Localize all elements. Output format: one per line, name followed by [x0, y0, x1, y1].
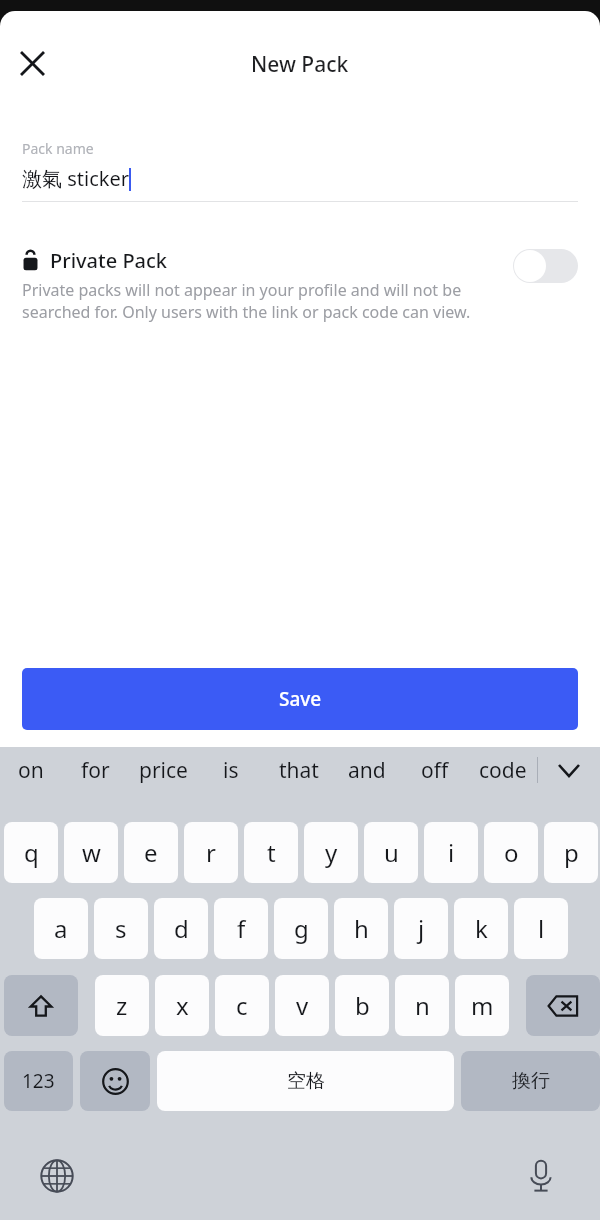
staticText: e — [144, 836, 158, 869]
staticText: Pack name — [22, 139, 94, 158]
staticText: 空格 — [287, 1069, 325, 1093]
button[interactable]: h — [334, 898, 388, 959]
button[interactable]: y — [304, 822, 358, 883]
button[interactable]: Shift — [4, 975, 78, 1036]
staticText: h — [354, 912, 369, 945]
button[interactable]: that — [265, 747, 333, 793]
button[interactable]: u — [364, 822, 418, 883]
button[interactable]: p — [544, 822, 598, 883]
staticText: and — [348, 756, 386, 785]
button[interactable]: Backspace — [526, 975, 600, 1036]
staticText: 換行 — [512, 1069, 550, 1093]
button[interactable]: o — [484, 822, 538, 883]
button[interactable]: s — [94, 898, 148, 959]
staticText: 激氣 sticker — [22, 165, 129, 192]
staticText: b — [355, 989, 370, 1022]
button[interactable]: r — [184, 822, 238, 883]
staticText: 123 — [22, 1068, 55, 1094]
button[interactable]: Private Pack — [22, 247, 578, 323]
button[interactable]: m — [455, 975, 509, 1036]
staticText: q — [24, 836, 39, 869]
button[interactable]: x — [155, 975, 209, 1036]
staticText: Private packs will not appear in your pr… — [22, 279, 490, 323]
button[interactable]: v — [275, 975, 329, 1036]
button[interactable]: c — [215, 975, 269, 1036]
staticText: k — [475, 912, 488, 945]
staticText: a — [54, 912, 68, 945]
staticText: v — [296, 989, 309, 1022]
button[interactable]: 換行 — [461, 1051, 600, 1111]
staticText: i — [448, 836, 455, 869]
staticText: p — [564, 836, 579, 869]
button[interactable]: Close — [9, 40, 56, 87]
staticText: f — [237, 912, 246, 945]
button[interactable]: d — [154, 898, 208, 959]
button[interactable]: a — [34, 898, 88, 959]
staticText: is — [223, 756, 239, 785]
button[interactable]: n — [395, 975, 449, 1036]
button[interactable]: for — [61, 747, 129, 793]
button[interactable]: price — [129, 747, 197, 793]
button[interactable]: e — [124, 822, 178, 883]
button[interactable]: l — [514, 898, 568, 959]
button[interactable]: Change keyboard language — [33, 1152, 81, 1200]
staticText: t — [267, 836, 276, 869]
button[interactable]: g — [274, 898, 328, 959]
staticText: s — [115, 912, 127, 945]
button[interactable]: q — [4, 822, 58, 883]
staticText: Save — [279, 686, 322, 712]
button[interactable]: and — [333, 747, 401, 793]
button[interactable]: on — [0, 747, 61, 793]
button[interactable]: Emoji — [80, 1051, 150, 1111]
staticText: on — [18, 756, 44, 785]
staticText: j — [418, 912, 425, 945]
button[interactable]: t — [244, 822, 298, 883]
staticText: that — [279, 756, 319, 785]
button[interactable]: 空格 — [157, 1051, 454, 1111]
button[interactable]: z — [95, 975, 149, 1036]
button[interactable]: Save — [22, 668, 578, 730]
staticText: g — [294, 912, 309, 945]
button[interactable]: off — [401, 747, 469, 793]
staticText: z — [116, 989, 128, 1022]
button[interactable]: code — [469, 747, 537, 793]
button[interactable]: is — [197, 747, 265, 793]
button[interactable]: 123 — [4, 1051, 73, 1111]
staticText: New Pack — [251, 50, 349, 79]
button[interactable]: w — [64, 822, 118, 883]
staticText: d — [174, 912, 189, 945]
staticText: u — [384, 836, 399, 869]
button[interactable]: j — [394, 898, 448, 959]
button[interactable]: b — [335, 975, 389, 1036]
button[interactable]: f — [214, 898, 268, 959]
staticText: for — [81, 756, 110, 785]
staticText: price — [139, 756, 188, 785]
staticText: off — [421, 756, 449, 785]
staticText: m — [471, 989, 494, 1022]
button[interactable]: Private Pack toggle — [513, 249, 578, 283]
staticText: y — [325, 836, 338, 869]
staticText: l — [538, 912, 545, 945]
button[interactable]: k — [454, 898, 508, 959]
button[interactable]: Collapse suggestions — [538, 747, 600, 793]
staticText: n — [415, 989, 430, 1022]
staticText: x — [176, 989, 189, 1022]
staticText: c — [236, 989, 248, 1022]
staticText: o — [504, 836, 519, 869]
staticText: code — [479, 756, 527, 785]
button[interactable]: Voice input — [517, 1152, 565, 1200]
staticText: Private Pack — [50, 247, 168, 274]
staticText: r — [206, 836, 216, 869]
staticText: w — [82, 836, 101, 869]
button[interactable]: i — [424, 822, 478, 883]
